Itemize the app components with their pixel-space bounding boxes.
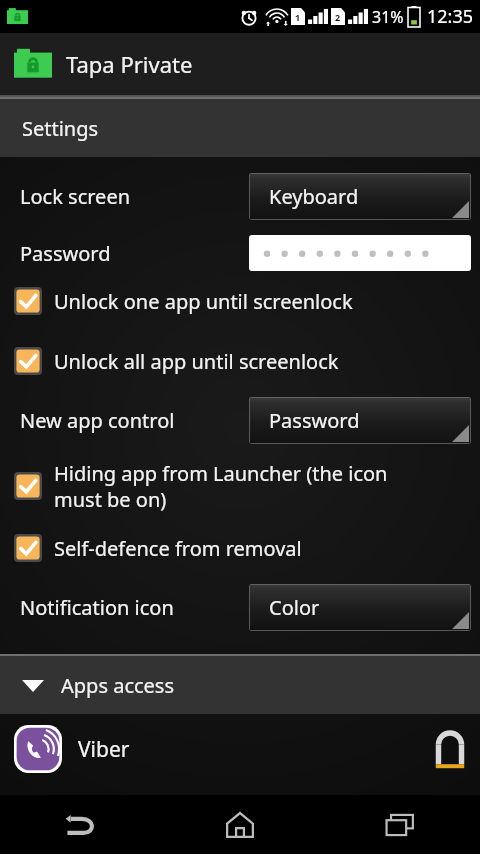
button[interactable]: Unlock all app until screenlock — [0, 315, 480, 375]
staticText: Password — [20, 240, 111, 267]
staticText: Notification icon — [20, 594, 174, 621]
staticText: 1 — [295, 11, 301, 23]
button[interactable]: Hiding app from Launcher (the icon must … — [0, 444, 480, 512]
button[interactable]: Self-defence from removal — [0, 512, 480, 562]
button[interactable]: Home — [160, 795, 320, 854]
button[interactable]: Back — [0, 795, 160, 854]
button[interactable]: Keyboard — [249, 173, 471, 220]
staticText: Apps access — [61, 672, 175, 699]
staticText: 31% — [372, 6, 404, 28]
staticText: Tapa Private — [66, 49, 193, 79]
staticText: 12:35 — [427, 4, 474, 29]
button[interactable]: Color — [249, 584, 471, 631]
button[interactable]: New app control — [0, 375, 480, 444]
button[interactable]: Tapa Private — [0, 33, 480, 95]
button[interactable]: Unlock one app until screenlock — [0, 271, 480, 315]
staticText: 2 — [335, 11, 341, 23]
staticText: Settings — [22, 115, 99, 142]
staticText: Password — [269, 407, 360, 434]
staticText: New app control — [20, 407, 175, 434]
button[interactable]: Password — [249, 397, 471, 444]
staticText: Unlock all app until screenlock — [54, 348, 339, 375]
button[interactable]: Apps access — [0, 656, 480, 714]
staticText: Lock screen — [20, 183, 131, 210]
staticText: Unlock one app until screenlock — [54, 288, 353, 315]
button[interactable]: Recent apps — [320, 795, 480, 854]
button[interactable]: Password — [0, 220, 480, 271]
staticText: Keyboard — [269, 183, 359, 210]
button[interactable]: Viber — [0, 714, 480, 784]
button[interactable]: Notification icon — [0, 562, 480, 631]
staticText: Viber — [78, 735, 130, 764]
button[interactable]: Settings — [0, 99, 480, 157]
staticText: Hiding app from Launcher (the icon must … — [54, 460, 388, 512]
staticText: Self-defence from removal — [54, 535, 302, 562]
staticText: Color — [269, 594, 320, 621]
button[interactable]: Lock screen — [0, 157, 480, 220]
